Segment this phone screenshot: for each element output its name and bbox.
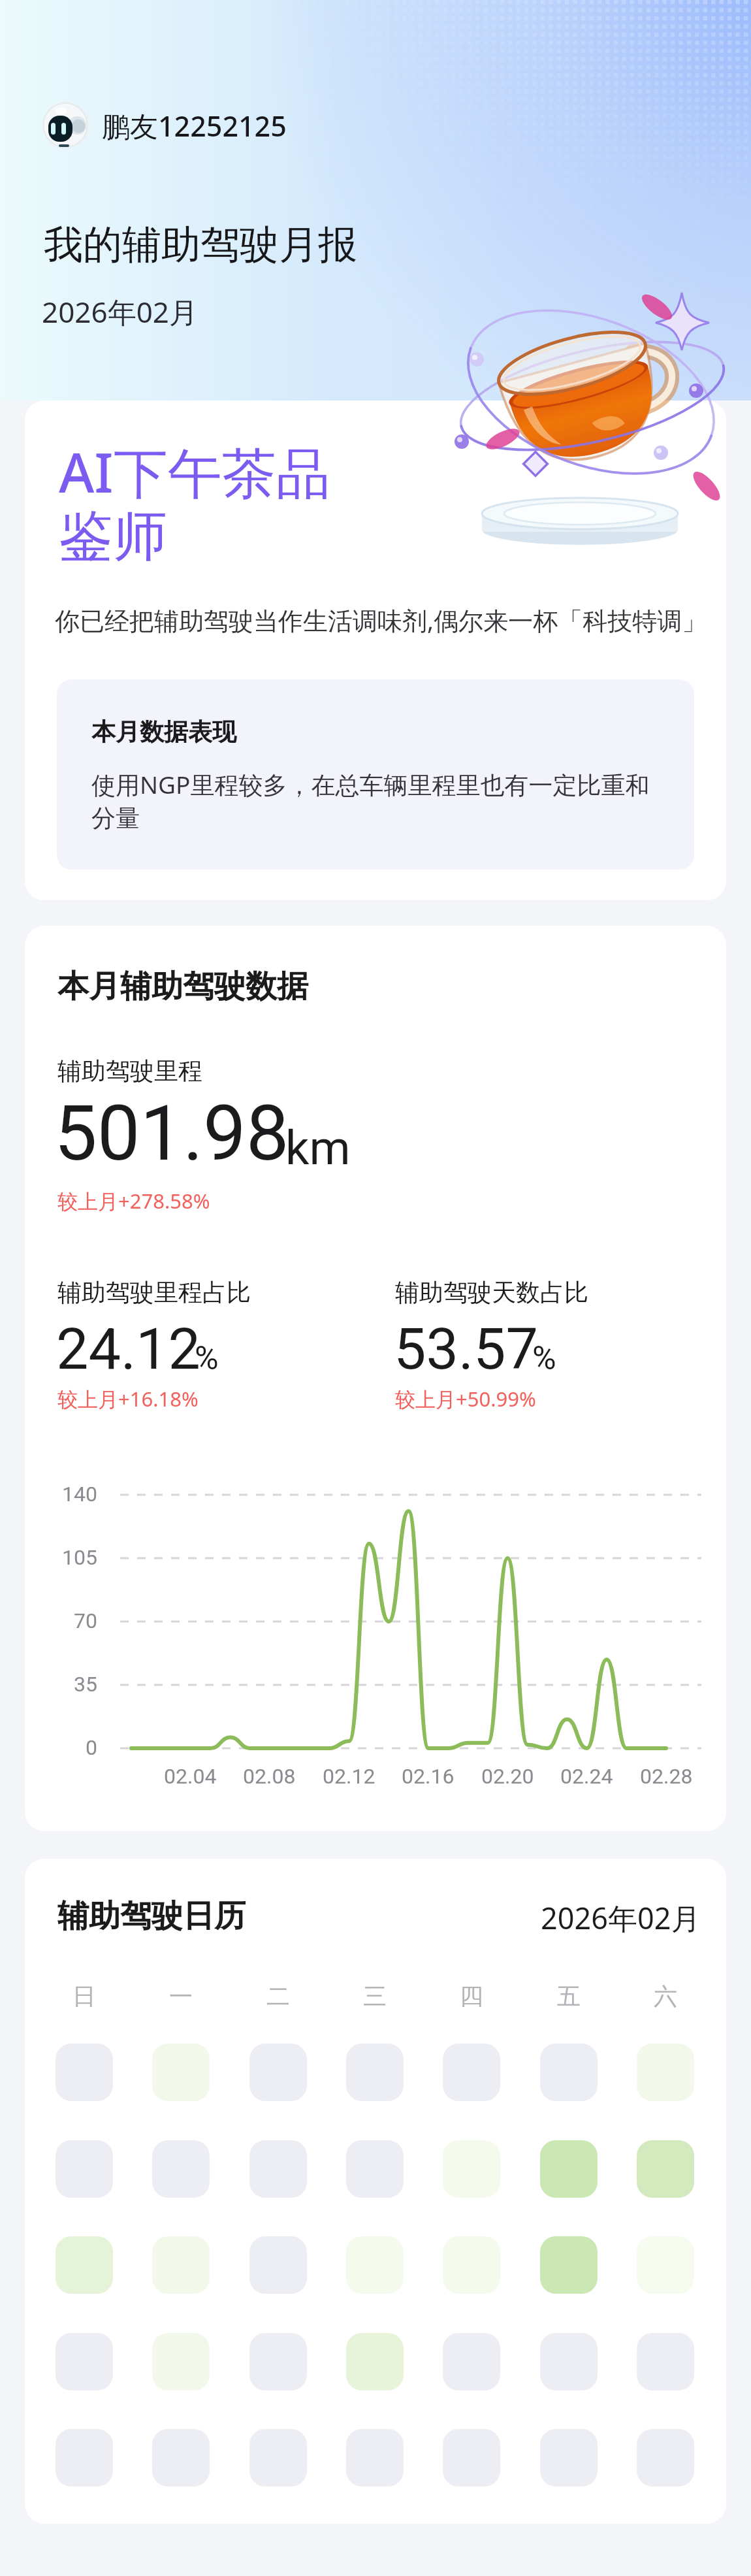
staticText: 使用NGP里程较多，在总车辆里程里也有一定比重和分量 [91,768,673,834]
button[interactable] [346,2044,404,2101]
button[interactable] [249,2429,307,2486]
staticText: 53.57 [394,1315,539,1382]
button[interactable] [249,2140,307,2198]
staticText: 三 [363,1981,387,2011]
staticText: 02.28 [640,1764,693,1789]
button[interactable]: AI下午茶品 鉴师 [25,400,726,900]
staticText: 辅助驾驶里程 [57,1056,202,1086]
staticText: 你已经把辅助驾驶当作生活调味剂,偶尔来一杯「科技特调」 [55,603,707,637]
button[interactable] [540,2044,598,2101]
button[interactable] [443,2236,500,2294]
button[interactable] [637,2140,694,2198]
staticText: 2026年02月 [42,292,199,331]
staticText: 24.12 [56,1315,201,1382]
button[interactable] [56,2140,113,2198]
button[interactable] [346,2333,404,2390]
staticText: 日 [72,1981,96,2011]
staticText: 较上月+278.58% [57,1187,210,1215]
staticText: 02.20 [481,1764,534,1789]
button[interactable] [443,2333,500,2390]
other: User avatar [42,101,90,150]
staticText: AI下午茶品 鉴师 [59,434,330,571]
staticText: 辅助驾驶里程占比 [57,1277,251,1308]
button[interactable] [249,2044,307,2101]
button[interactable] [152,2429,210,2486]
staticText: 70 [74,1608,97,1633]
button[interactable] [540,2140,598,2198]
staticText: 五 [557,1981,581,2011]
button[interactable] [152,2044,210,2101]
button[interactable] [152,2236,210,2294]
staticText: 0 [86,1735,97,1760]
staticText: 较上月+16.18% [57,1385,199,1412]
button[interactable] [540,2429,598,2486]
button[interactable] [637,2044,694,2101]
staticText: 四 [460,1981,483,2011]
staticText: 本月辅助驾驶数据 [57,967,308,1006]
button[interactable] [346,2140,404,2198]
staticText: 02.24 [560,1764,613,1789]
button[interactable] [443,2140,500,2198]
staticText: 我的辅助驾驶月报 [44,220,357,270]
button[interactable] [637,2333,694,2390]
staticText: 辅助驾驶日历 [57,1897,246,1936]
button[interactable] [152,2140,210,2198]
staticText: 2026年02月 [541,1898,701,1938]
staticText: 501.98 [54,1088,289,1178]
staticText: 02.16 [402,1764,455,1789]
button[interactable] [249,2333,307,2390]
button[interactable]: User avatar [42,101,287,150]
button[interactable] [540,2236,598,2294]
staticText: 105 [62,1545,97,1570]
button[interactable] [443,2044,500,2101]
button[interactable] [443,2429,500,2486]
staticText: 辅助驾驶天数占比 [395,1277,588,1308]
button[interactable] [56,2333,113,2390]
staticText: 02.08 [243,1764,296,1789]
staticText: 35 [74,1672,97,1697]
staticText: 一 [169,1981,193,2011]
staticText: 较上月+50.99% [395,1385,536,1412]
staticText: 鹏友12252125 [102,106,287,145]
button[interactable] [637,2236,694,2294]
staticText: % [532,1339,556,1378]
staticText: 本月数据表现 [91,717,236,747]
staticText: 02.12 [323,1764,375,1789]
button[interactable] [56,2429,113,2486]
staticText: km [285,1120,351,1175]
staticText: % [195,1339,219,1378]
button[interactable] [56,2044,113,2101]
button[interactable] [346,2429,404,2486]
button[interactable] [637,2429,694,2486]
button[interactable] [249,2236,307,2294]
staticText: 二 [266,1981,290,2011]
button[interactable] [346,2236,404,2294]
staticText: 02.04 [164,1764,217,1789]
staticText: 140 [62,1482,97,1507]
staticText: 六 [654,1981,677,2011]
button[interactable] [152,2333,210,2390]
button[interactable] [56,2236,113,2294]
button[interactable] [540,2333,598,2390]
